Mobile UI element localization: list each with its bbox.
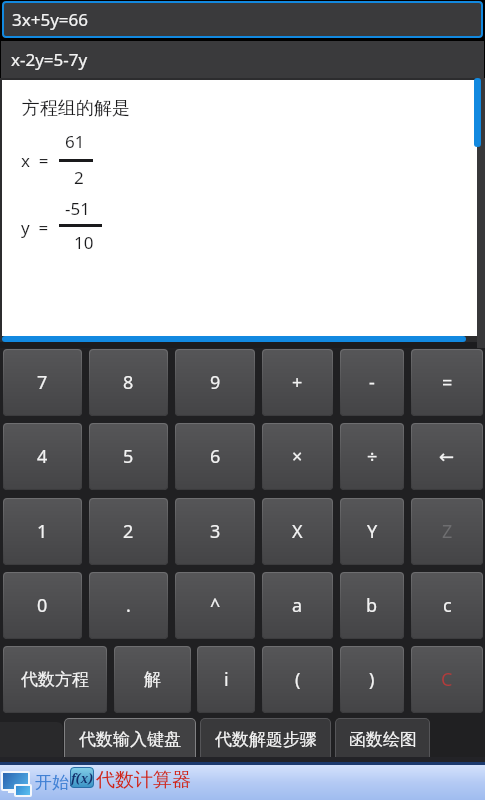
staticText: -51 xyxy=(65,197,90,220)
staticText: 解 xyxy=(144,669,161,690)
button[interactable]: x-2y=5-7y xyxy=(1,41,484,78)
staticText: x-2y=5-7y xyxy=(11,48,88,71)
staticText: C xyxy=(441,667,453,692)
staticText: 代数计算器 xyxy=(96,768,191,792)
button[interactable]: 解 xyxy=(114,646,191,713)
button[interactable]: X xyxy=(262,498,333,565)
staticText: = xyxy=(442,370,453,395)
button[interactable]: - xyxy=(340,349,404,416)
button[interactable]: 3 xyxy=(175,498,255,565)
staticText: y = xyxy=(21,216,49,239)
staticText: 4 xyxy=(37,444,48,469)
staticText: 3 xyxy=(210,519,221,544)
button[interactable]: 代数方程 xyxy=(3,646,107,713)
staticText: . xyxy=(126,593,131,618)
button[interactable]: 0 xyxy=(3,572,82,639)
button[interactable]: = xyxy=(411,349,483,416)
button[interactable]: 5 xyxy=(89,423,168,490)
button[interactable]: 1 xyxy=(3,498,82,565)
button[interactable]: 9 xyxy=(175,349,255,416)
staticText: ( xyxy=(295,667,301,692)
staticText: f(x) xyxy=(71,770,93,786)
staticText: 7 xyxy=(37,370,48,395)
staticText: b xyxy=(366,593,378,618)
button[interactable]: ^ xyxy=(175,572,255,639)
staticText: - xyxy=(369,370,375,395)
staticText: a xyxy=(292,593,303,618)
button[interactable]: b xyxy=(340,572,404,639)
button[interactable]: a xyxy=(262,572,333,639)
staticText: + xyxy=(292,370,303,395)
button[interactable]: ÷ xyxy=(340,423,404,490)
staticText: 代数输入键盘 xyxy=(79,729,181,750)
staticText: 61 xyxy=(65,130,85,153)
button[interactable]: C xyxy=(411,646,483,713)
staticText: 开始 xyxy=(35,772,69,793)
staticText: ) xyxy=(369,667,375,692)
staticText: 2 xyxy=(123,519,134,544)
staticText: 3x+5y=66 xyxy=(12,8,89,31)
staticText: X xyxy=(292,519,303,544)
staticText: 10 xyxy=(74,231,94,254)
button[interactable]: 函数绘图 xyxy=(335,718,430,760)
staticText: i xyxy=(224,667,229,692)
staticText: 8 xyxy=(123,370,134,395)
button[interactable]: 2 xyxy=(89,498,168,565)
staticText: 5 xyxy=(123,444,134,469)
staticText: 2 xyxy=(74,166,84,189)
staticText: ÷ xyxy=(367,444,378,469)
button[interactable]: 6 xyxy=(175,423,255,490)
button[interactable]: 代数解题步骤 xyxy=(200,718,331,760)
staticText: 函数绘图 xyxy=(349,729,417,750)
staticText: 0 xyxy=(37,593,48,618)
staticText: 9 xyxy=(210,370,221,395)
button[interactable]: + xyxy=(262,349,333,416)
button[interactable]: Y xyxy=(340,498,404,565)
button[interactable]: f(x) xyxy=(70,767,94,788)
staticText: ← xyxy=(439,446,455,467)
button[interactable]: 4 xyxy=(3,423,82,490)
staticText: × xyxy=(292,444,303,469)
button[interactable]: 代数输入键盘 xyxy=(64,718,196,760)
button[interactable]: × xyxy=(262,423,333,490)
button[interactable]: 3x+5y=66 xyxy=(2,1,483,38)
staticText: 代数解题步骤 xyxy=(215,729,317,750)
button[interactable]: . xyxy=(89,572,168,639)
button[interactable]: ← xyxy=(411,423,483,490)
button[interactable]: 8 xyxy=(89,349,168,416)
staticText: x = xyxy=(21,149,49,172)
staticText: 方程组的解是 xyxy=(22,97,130,120)
button[interactable]: 7 xyxy=(3,349,82,416)
button[interactable]: ( xyxy=(262,646,333,713)
staticText: Y xyxy=(367,519,378,544)
staticText: c xyxy=(443,593,452,618)
button[interactable]: 开始 xyxy=(34,766,70,799)
staticText: ^ xyxy=(210,593,221,618)
button[interactable]: ) xyxy=(340,646,404,713)
staticText: 1 xyxy=(37,519,48,544)
staticText: Z xyxy=(442,519,453,544)
button[interactable]: i xyxy=(197,646,255,713)
staticText: 6 xyxy=(210,444,221,469)
staticText: 代数方程 xyxy=(21,669,89,690)
button[interactable]: Z xyxy=(411,498,483,565)
button[interactable]: c xyxy=(411,572,483,639)
